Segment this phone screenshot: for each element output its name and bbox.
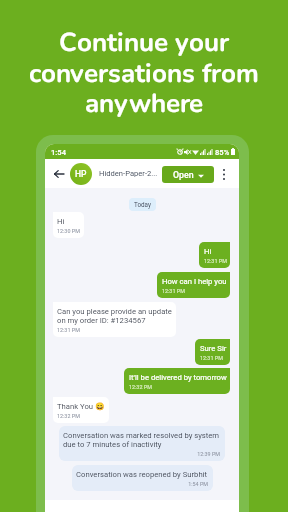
button[interactable]: Hi xyxy=(199,242,230,268)
staticText: 12:31 PM xyxy=(162,288,185,294)
staticText: 12:32 PM xyxy=(129,384,152,390)
staticText: Can you please provide an update xyxy=(57,307,172,316)
staticText: Open xyxy=(173,170,194,180)
staticText: HP xyxy=(75,169,87,179)
button[interactable]: Sure Sir xyxy=(195,339,230,365)
button[interactable]: Thank You 😄 xyxy=(53,397,109,423)
button[interactable]: Back xyxy=(51,159,67,188)
staticText: Thank You 😄 xyxy=(57,402,105,411)
button[interactable]: It'll be delivered by tomorrow xyxy=(124,368,230,394)
staticText: 1:54 PM xyxy=(76,481,208,487)
staticText: Hi xyxy=(57,217,65,226)
button[interactable]: How can I help you xyxy=(157,272,230,298)
button[interactable]: Hi xyxy=(53,212,84,238)
staticText: 12:31 PM xyxy=(204,258,227,264)
staticText: 1:54 xyxy=(51,148,66,157)
staticText: 12:31 PM xyxy=(57,327,80,333)
staticText: 12:31 PM xyxy=(200,355,223,361)
staticText: Hidden-Paper-2... xyxy=(99,169,158,178)
button[interactable]: Open xyxy=(162,166,214,183)
staticText: 12:32 PM xyxy=(57,413,80,419)
staticText: Conversation was reopened by Surbhit xyxy=(76,470,208,479)
staticText: Hi xyxy=(204,247,212,256)
button[interactable]: Can you please provide an update xyxy=(53,302,176,337)
button[interactable]: Conversation was marked resolved by syst… xyxy=(59,426,225,461)
staticText: Conversation was marked resolved by syst… xyxy=(63,431,220,440)
button[interactable]: More options xyxy=(217,162,230,186)
button[interactable]: Contact avatar xyxy=(70,163,92,185)
staticText: How can I help you xyxy=(162,277,227,286)
staticText: It'll be delivered by tomorrow xyxy=(129,373,227,382)
staticText: 12:39 PM xyxy=(63,451,220,457)
button[interactable]: Conversation was reopened by Surbhit xyxy=(72,465,213,491)
staticText: due to 7 minutes of inactivity xyxy=(63,440,162,449)
button[interactable]: Today xyxy=(129,198,156,211)
staticText: on my order ID: #1234567 xyxy=(57,316,146,325)
staticText: 12:30 PM xyxy=(57,228,80,234)
staticText: 85% xyxy=(215,148,230,157)
staticText: Today xyxy=(134,201,151,208)
staticText: Sure Sir xyxy=(200,344,227,353)
